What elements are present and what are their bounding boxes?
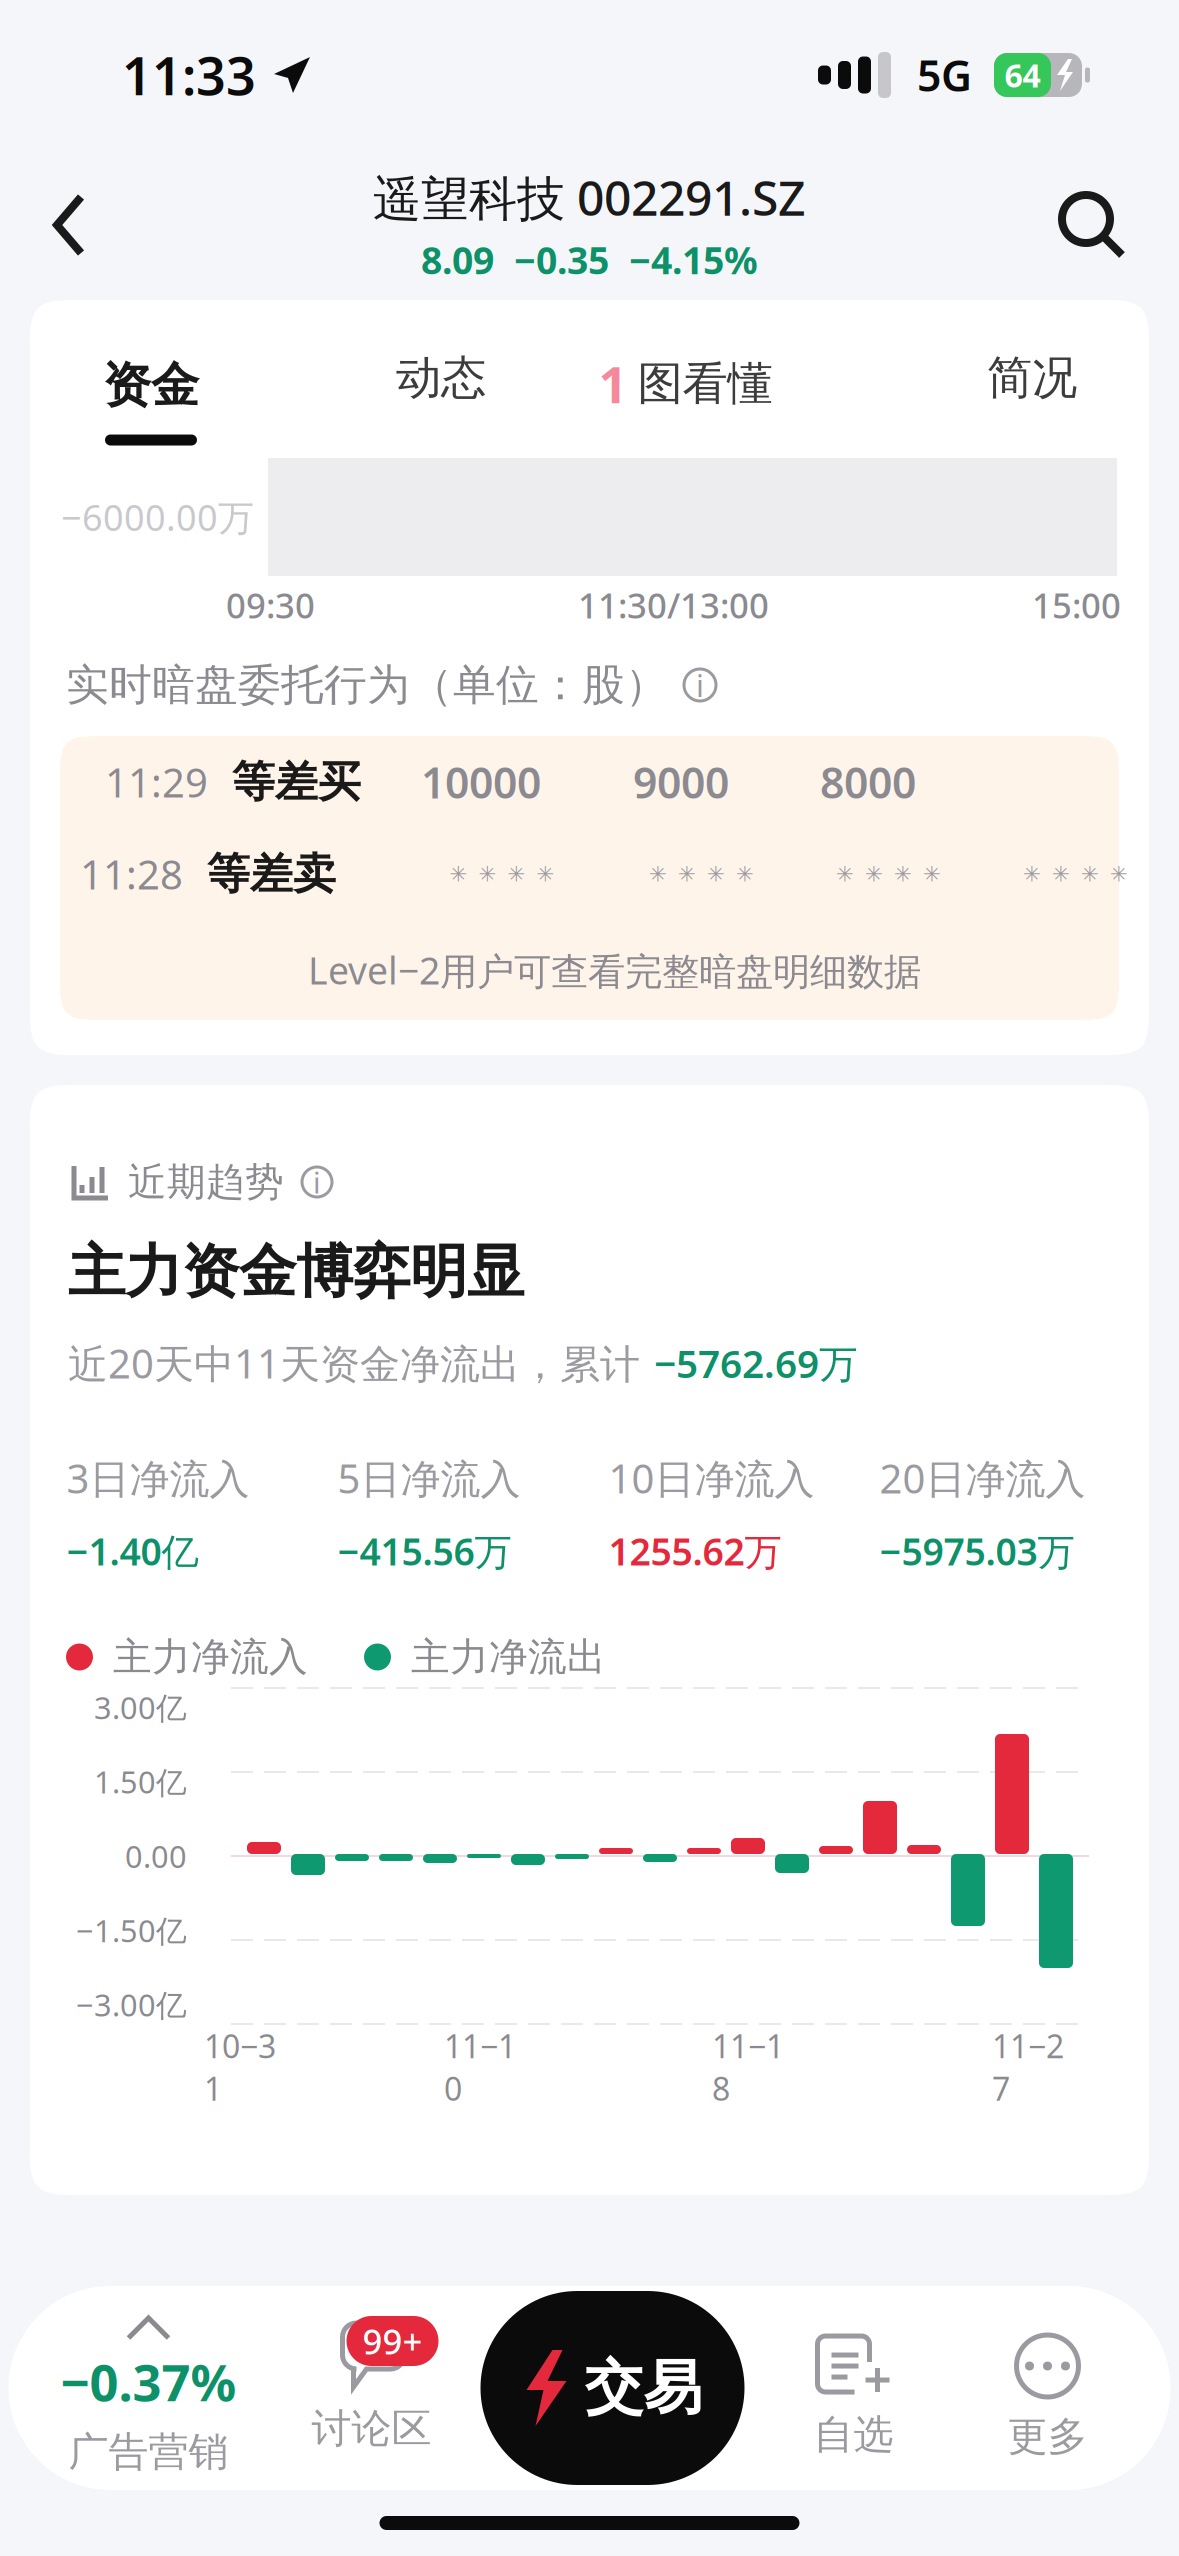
- button[interactable]: 资金: [100, 350, 202, 446]
- staticText: 8000: [820, 754, 916, 810]
- staticText: 10000: [421, 754, 541, 810]
- staticText: ✳: [536, 862, 554, 886]
- staticText: ✳: [736, 862, 754, 886]
- staticText: 10−31: [204, 2024, 276, 2109]
- staticText: ✳: [1110, 862, 1128, 886]
- staticText: 遥望科技 002291.SZ: [373, 165, 806, 229]
- button[interactable]: 99+: [276, 2286, 466, 2490]
- button[interactable]: 简况: [981, 350, 1083, 446]
- staticText: 3.00亿: [94, 1687, 187, 1728]
- staticText: 等差买: [232, 756, 361, 808]
- staticText: ✳: [865, 862, 883, 886]
- button[interactable]: Search: [1037, 160, 1147, 290]
- staticText: 主力净流入: [113, 1633, 308, 1681]
- staticText: 11:29: [105, 755, 208, 808]
- staticText: −1.50亿: [76, 1910, 187, 1951]
- staticText: ✳: [1081, 862, 1099, 886]
- button[interactable]: 交易: [480, 2291, 744, 2485]
- staticText: 交易: [584, 2352, 702, 2424]
- button[interactable]: 动态: [390, 350, 492, 446]
- button[interactable]: Back: [14, 160, 124, 290]
- staticText: 15:00: [1032, 582, 1121, 628]
- staticText: 11:28: [80, 847, 183, 900]
- staticText: 自选: [813, 2410, 893, 2459]
- staticText: −5975.03万: [879, 1526, 1074, 1576]
- staticText: i: [313, 1162, 321, 1201]
- staticText: −5762.69万: [654, 1337, 858, 1389]
- staticText: 等差卖: [207, 848, 336, 900]
- staticText: ✳: [1052, 862, 1070, 886]
- button[interactable]: 更多: [952, 2286, 1142, 2490]
- staticText: −415.56万: [337, 1526, 511, 1576]
- staticText: 0.00: [125, 1836, 187, 1876]
- staticText: 11−10: [444, 2024, 516, 2109]
- staticText: Level−2用户可查看完整暗盘明细数据: [308, 945, 921, 995]
- staticText: ✳: [649, 862, 667, 886]
- staticText: 11−18: [712, 2024, 784, 2109]
- staticText: ✳: [478, 862, 496, 886]
- staticText: −6000.00万: [61, 493, 254, 541]
- staticText: 图看懂: [637, 356, 772, 411]
- staticText: 1255.62万: [608, 1526, 781, 1576]
- staticText: 讨论区: [311, 2404, 431, 2453]
- staticText: ✳: [836, 862, 854, 886]
- staticText: 1: [598, 350, 627, 417]
- staticText: 实时暗盘委托行为（单位：股）: [66, 659, 668, 711]
- staticText: ✳: [507, 862, 525, 886]
- staticText: 1.50亿: [94, 1761, 187, 1802]
- staticText: 3日净流入: [66, 1451, 249, 1504]
- staticText: ✳: [923, 862, 941, 886]
- staticText: 11:30/13:00: [578, 582, 769, 628]
- staticText: 主力净流出: [411, 1633, 606, 1681]
- staticText: 9000: [633, 754, 729, 810]
- staticText: 8.09 −0.35 −4.15%: [421, 235, 758, 285]
- staticText: −1.40亿: [66, 1526, 198, 1576]
- staticText: −3.00亿: [76, 1984, 187, 2025]
- button[interactable]: 自选: [758, 2286, 948, 2490]
- staticText: 64: [1004, 54, 1040, 96]
- staticText: 11−27: [992, 2024, 1064, 2109]
- staticText: 更多: [1007, 2412, 1087, 2461]
- staticText: 近20天中11天资金净流出，累计: [68, 1336, 640, 1389]
- staticText: 动态: [396, 350, 486, 406]
- staticText: 20日净流入: [879, 1451, 1085, 1504]
- staticText: 近期趋势: [128, 1158, 284, 1206]
- staticText: ✳: [678, 862, 696, 886]
- staticText: 99+: [362, 2318, 422, 2364]
- staticText: ✳: [707, 862, 725, 886]
- staticText: 5G: [917, 47, 972, 103]
- staticText: ✳: [449, 862, 467, 886]
- staticText: i: [696, 665, 704, 705]
- staticText: 资金: [103, 356, 199, 415]
- staticText: ✳: [1023, 862, 1041, 886]
- staticText: 10日净流入: [608, 1451, 814, 1504]
- button[interactable]: 1: [588, 350, 783, 446]
- staticText: 5日净流入: [337, 1451, 520, 1504]
- staticText: 11:33: [122, 40, 256, 110]
- staticText: 主力资金博弈明显: [68, 1237, 524, 1307]
- staticText: 09:30: [226, 582, 315, 628]
- button[interactable]: −0.37%: [42, 2286, 254, 2490]
- staticText: 广告营销: [68, 2427, 228, 2476]
- staticText: ✳: [894, 862, 912, 886]
- staticText: 简况: [987, 350, 1077, 406]
- staticText: −0.37%: [60, 2348, 236, 2415]
